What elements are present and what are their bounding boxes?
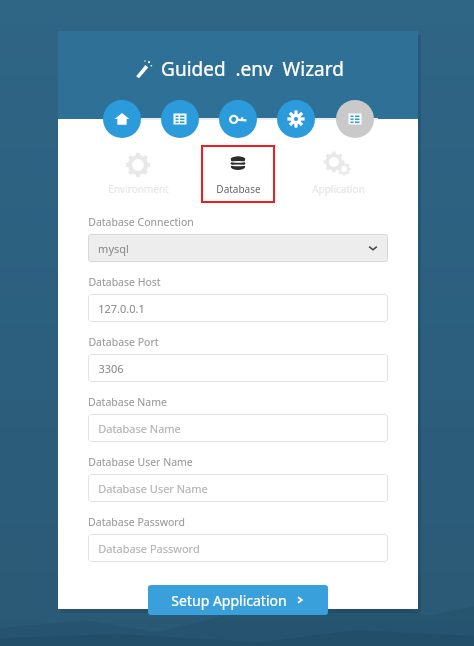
button[interactable]: Database <box>201 145 275 203</box>
button[interactable]: Application <box>298 145 378 203</box>
staticText: Database Host <box>88 275 161 289</box>
staticText: Database Name <box>98 421 181 436</box>
staticText: Database <box>216 182 261 196</box>
staticText: mysql <box>98 241 129 256</box>
staticText: Database User Name <box>98 481 208 496</box>
button[interactable]: 3306 <box>88 354 388 382</box>
staticText: Guided .env Wizard <box>161 56 344 82</box>
staticText: Database Password <box>88 515 185 529</box>
button[interactable]: Settings <box>277 100 315 138</box>
button[interactable]: Home <box>103 100 141 138</box>
button[interactable]: Database User Name <box>88 474 388 502</box>
staticText: Database Name <box>88 395 167 409</box>
staticText: 127.0.0.1 <box>98 301 145 316</box>
staticText: Setup Application <box>171 591 287 610</box>
staticText: Database Connection <box>88 215 194 229</box>
staticText: 3306 <box>98 361 124 376</box>
button[interactable]: Database Name <box>88 414 388 442</box>
staticText: Database Password <box>98 541 200 556</box>
staticText: Database Port <box>88 335 159 349</box>
button[interactable]: Database Password <box>88 534 388 562</box>
button[interactable]: 127.0.0.1 <box>88 294 388 322</box>
button[interactable]: Summary <box>336 100 374 138</box>
staticText: Database User Name <box>88 455 193 469</box>
button[interactable]: Key <box>219 100 257 138</box>
button[interactable]: mysql <box>88 234 388 262</box>
button[interactable]: Setup Application <box>148 585 328 615</box>
button[interactable]: Environment <box>161 100 199 138</box>
button[interactable]: Environment <box>98 145 178 203</box>
staticText: Application <box>312 182 365 196</box>
staticText: Environment <box>108 182 169 196</box>
